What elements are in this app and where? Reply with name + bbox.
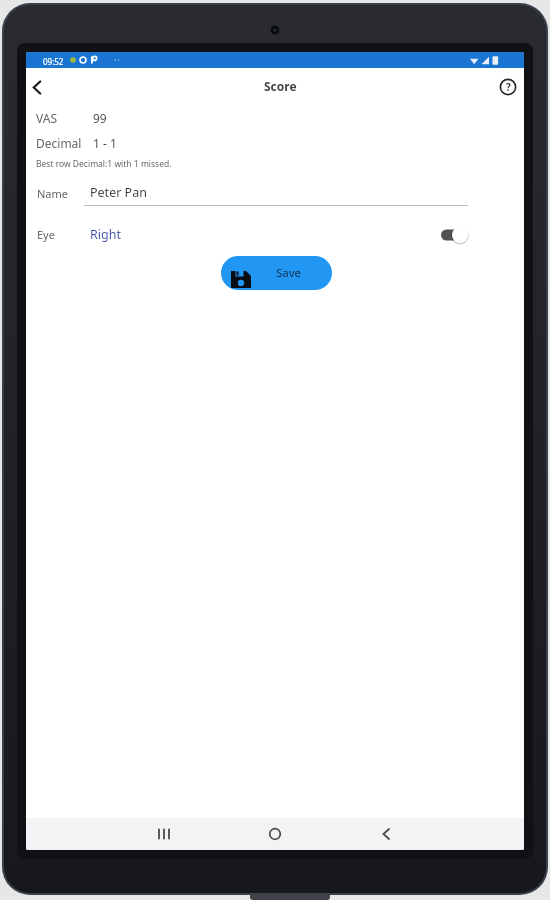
button[interactable]: Peter Pan bbox=[84, 178, 468, 208]
staticText: Peter Pan bbox=[90, 184, 147, 201]
staticText: Save bbox=[276, 265, 302, 281]
button[interactable] bbox=[150, 820, 178, 848]
button[interactable] bbox=[26, 74, 52, 100]
staticText: Eye bbox=[37, 227, 55, 242]
staticText: Decimal bbox=[36, 135, 82, 151]
staticText: Name bbox=[37, 186, 69, 201]
staticText: 99 bbox=[93, 110, 107, 126]
button[interactable] bbox=[372, 820, 400, 848]
button[interactable]: ? bbox=[496, 75, 520, 99]
staticText: 09:52 bbox=[43, 56, 64, 67]
button[interactable]: Save bbox=[221, 256, 332, 290]
staticText: 1 - 1 bbox=[93, 135, 117, 151]
staticText: Score bbox=[264, 78, 297, 94]
button[interactable] bbox=[261, 820, 289, 848]
staticText: ? bbox=[506, 80, 511, 94]
button[interactable] bbox=[436, 224, 472, 246]
staticText: Right bbox=[90, 226, 121, 243]
staticText: VAS bbox=[36, 110, 57, 126]
button[interactable]: Right bbox=[86, 222, 146, 244]
staticText: Best row Decimal:1 with 1 missed. bbox=[36, 158, 172, 170]
